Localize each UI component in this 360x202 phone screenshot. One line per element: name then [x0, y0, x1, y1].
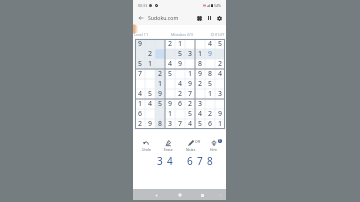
button[interactable]: 2	[185, 99, 195, 109]
button[interactable]: 2	[215, 59, 225, 69]
button[interactable]	[155, 109, 165, 119]
button[interactable]: 7	[185, 89, 195, 99]
button[interactable]: 2	[135, 119, 145, 129]
button[interactable]: 5	[135, 59, 145, 69]
button[interactable]: 6	[175, 99, 185, 109]
button[interactable]	[145, 69, 155, 79]
button[interactable]: 5	[185, 109, 195, 119]
button[interactable]: 9	[195, 69, 205, 79]
button[interactable]: 4	[205, 39, 215, 49]
button[interactable]: 1	[215, 119, 225, 129]
button[interactable]	[185, 59, 195, 69]
button[interactable]: 4	[175, 79, 185, 89]
button[interactable]: Off	[179, 139, 202, 152]
button[interactable]: 8	[195, 59, 205, 69]
button[interactable]	[215, 79, 225, 89]
button[interactable]	[145, 79, 155, 89]
button[interactable]: 5	[205, 79, 215, 89]
button[interactable]	[165, 79, 175, 89]
button[interactable]: 2	[145, 49, 155, 59]
button[interactable]: 8	[205, 69, 215, 79]
button[interactable]: 4	[185, 119, 195, 129]
button[interactable]: 3	[155, 154, 165, 168]
button[interactable]	[175, 69, 185, 79]
button[interactable]: 8	[205, 154, 215, 168]
button[interactable]: 1	[185, 69, 195, 79]
button[interactable]	[215, 49, 225, 59]
button[interactable]: 6	[205, 119, 215, 129]
button[interactable]: 3	[185, 49, 195, 59]
button[interactable]: 3	[215, 89, 225, 99]
button[interactable]: Recent apps	[197, 190, 207, 200]
button[interactable]: 9	[185, 79, 195, 89]
button[interactable]: 9	[165, 99, 175, 109]
button[interactable]	[145, 39, 155, 49]
button[interactable]: 9	[155, 89, 165, 99]
button[interactable]: 7	[195, 154, 205, 168]
button[interactable]: 4	[195, 109, 205, 119]
button[interactable]: 5	[155, 99, 165, 109]
button[interactable]: 1	[175, 39, 185, 49]
button[interactable]: 4	[165, 154, 175, 168]
button[interactable]	[195, 89, 205, 99]
button[interactable]: 5	[165, 69, 175, 79]
button[interactable]	[135, 79, 145, 89]
button[interactable]: 4	[165, 59, 175, 69]
button[interactable]	[205, 59, 215, 69]
button[interactable]	[195, 39, 205, 49]
button[interactable]: 1	[145, 59, 155, 69]
button[interactable]: Events	[193, 12, 205, 24]
button[interactable]: 7	[175, 119, 185, 129]
button[interactable]	[205, 99, 215, 109]
button[interactable]: 1	[195, 49, 205, 59]
button[interactable]: 2	[165, 39, 175, 49]
button[interactable]: Settings	[213, 12, 225, 24]
button[interactable]	[155, 49, 165, 59]
button[interactable]: 2	[205, 109, 215, 119]
button[interactable]	[155, 59, 165, 69]
button[interactable]: 1	[135, 99, 145, 109]
button[interactable]	[215, 99, 225, 109]
button[interactable]	[145, 109, 155, 119]
button[interactable]: 4	[215, 69, 225, 79]
button[interactable]	[185, 39, 195, 49]
button[interactable]: 9	[135, 39, 145, 49]
button[interactable]: 5	[145, 89, 155, 99]
button[interactable]: 6	[185, 154, 195, 168]
button[interactable]: Pause	[203, 12, 215, 24]
button[interactable]: 9	[175, 59, 185, 69]
button[interactable]: 9	[215, 109, 225, 119]
button[interactable]: Undo	[135, 139, 157, 152]
button[interactable]: 1	[155, 79, 165, 89]
button[interactable]: Back	[135, 12, 147, 24]
button[interactable]	[135, 49, 145, 59]
button[interactable]: Home	[175, 190, 185, 200]
button[interactable]: Open panel	[133, 24, 139, 34]
button[interactable]: 8	[155, 119, 165, 129]
button[interactable]	[165, 49, 175, 59]
button[interactable]: 7	[135, 69, 145, 79]
button[interactable]	[155, 39, 165, 49]
button[interactable]: 9	[145, 119, 155, 129]
button[interactable]: 3	[195, 99, 205, 109]
button[interactable]: 1	[202, 139, 225, 152]
button[interactable]	[175, 109, 185, 119]
button[interactable]: 5	[175, 49, 185, 59]
button[interactable]: 4	[145, 99, 155, 109]
button[interactable]: 2	[195, 79, 205, 89]
button[interactable]: 3	[165, 119, 175, 129]
button[interactable]: 5	[195, 119, 205, 129]
button[interactable]: 1	[205, 89, 215, 99]
button[interactable]: 9	[205, 49, 215, 59]
button[interactable]: 5	[215, 39, 225, 49]
button[interactable]: Back	[151, 190, 161, 200]
button[interactable]: 6	[135, 109, 145, 119]
button[interactable]	[165, 89, 175, 99]
button[interactable]: 4	[135, 89, 145, 99]
button[interactable]: 1	[165, 109, 175, 119]
